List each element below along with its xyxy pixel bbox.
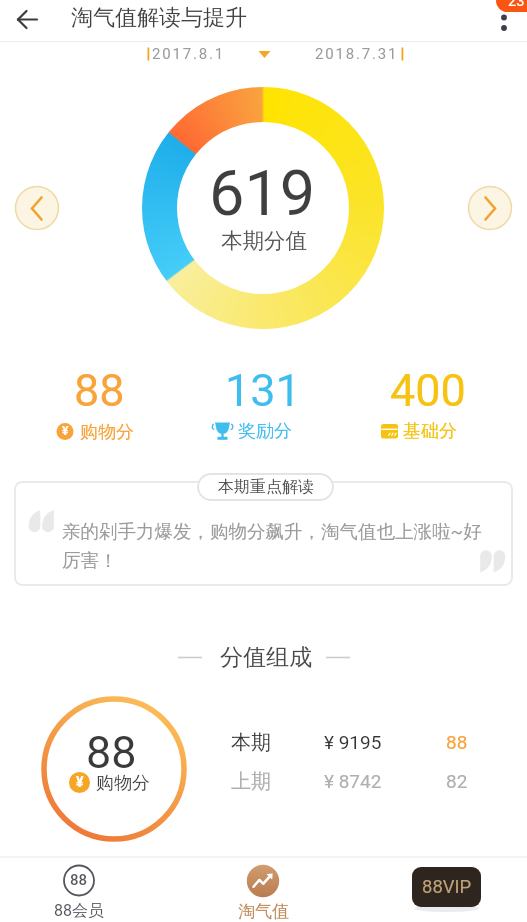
staticText: 基础分: [403, 420, 457, 443]
staticText: 88VIP: [422, 876, 472, 898]
staticText: 本期: [231, 730, 271, 755]
staticText: 厉害！: [62, 549, 118, 572]
staticText: 本期分值: [221, 227, 307, 254]
staticText: ¥ 9195: [324, 731, 382, 753]
button[interactable]: [16, 187, 59, 230]
staticText: 88: [86, 726, 137, 779]
button[interactable]: [39, 858, 119, 922]
staticText: 88: [446, 731, 468, 753]
button[interactable]: [488, 6, 527, 40]
button[interactable]: [140, 42, 410, 64]
button[interactable]: [0, 0, 56, 41]
staticText: 88会员: [54, 901, 104, 921]
staticText: 奖励分: [238, 420, 292, 443]
button[interactable]: 本期重点解读: [197, 473, 334, 501]
staticText: 82: [446, 770, 468, 792]
staticText: 2017.8.1: [152, 45, 225, 63]
staticText: 88: [74, 364, 125, 417]
staticText: 619: [209, 157, 316, 231]
staticText: 131: [225, 364, 301, 417]
staticText: ¥ 8742: [324, 770, 382, 792]
button[interactable]: 88VIP: [412, 867, 481, 907]
staticText: ¥: [62, 424, 69, 438]
staticText: 本期重点解读: [218, 477, 314, 497]
staticText: 23: [508, 0, 525, 10]
staticText: 2018.7.31: [315, 45, 399, 63]
button[interactable]: [469, 187, 512, 230]
button[interactable]: [223, 858, 303, 922]
staticText: 上期: [231, 769, 271, 794]
staticText: 购物分: [96, 772, 150, 795]
staticText: 亲的剁手力爆发，购物分飙升，淘气值也上涨啦~好: [62, 520, 482, 543]
staticText: 400: [390, 364, 466, 417]
staticText: 88: [70, 871, 88, 889]
staticText: 购物分: [80, 421, 134, 444]
staticText: 分值组成: [220, 643, 312, 672]
staticText: 淘气值解读与提升: [71, 4, 247, 32]
staticText: ¥: [76, 774, 84, 790]
staticText: 淘气值: [238, 901, 289, 922]
